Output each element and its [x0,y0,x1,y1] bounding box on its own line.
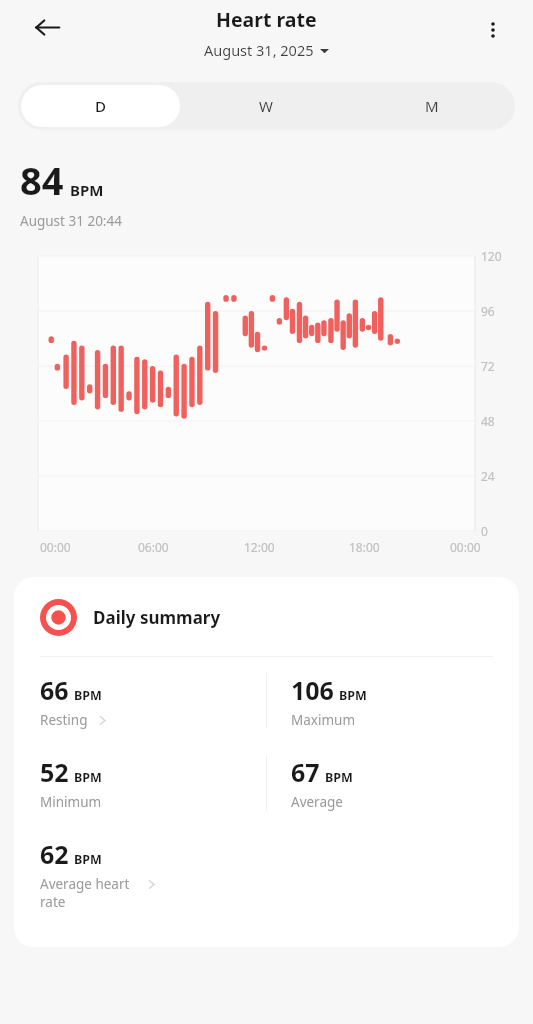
button[interactable]: Back [23,3,71,51]
staticText: 24 [481,468,495,484]
staticText: 96 [481,303,495,319]
staticText: August 31 20:44 [20,212,122,230]
button[interactable]: 62 [14,837,266,911]
staticText: Daily summary [93,606,221,629]
staticText: 00:00 [450,539,481,555]
staticText: 12:00 [244,539,275,555]
button[interactable]: M [352,85,512,127]
button[interactable]: 106 [267,673,519,735]
button[interactable]: More options [471,8,515,52]
button[interactable]: 52 [14,755,266,817]
staticText: 66 [40,673,69,707]
staticText: BPM [339,687,367,704]
staticText: rate [40,893,66,911]
button[interactable]: W [186,85,346,127]
staticText: 52 [40,755,69,789]
staticText: BPM [74,687,102,704]
staticText: D [95,96,106,116]
staticText: BPM [70,180,104,200]
staticText: 48 [481,413,495,429]
staticText: 06:00 [138,539,169,555]
staticText: BPM [74,851,102,868]
staticText: Maximum [291,711,356,729]
staticText: 67 [291,755,320,789]
button[interactable]: D [21,85,180,127]
button[interactable]: 66 [14,673,266,735]
staticText: 72 [481,358,495,374]
staticText: Average heart [40,875,130,893]
staticText: Minimum [40,793,102,811]
staticText: W [259,96,273,116]
staticText: BPM [74,769,102,786]
staticText: 106 [291,673,334,707]
staticText: August 31, 2025 [204,40,314,60]
staticText: 120 [481,248,502,264]
staticText: Resting [40,711,88,729]
staticText: 18:00 [349,539,380,555]
staticText: 00:00 [40,539,71,555]
staticText: 84 [20,154,64,206]
staticText: M [425,96,439,116]
staticText: Heart rate [216,6,317,33]
button[interactable]: 67 [267,755,519,817]
button[interactable]: Daily summary [14,577,519,656]
staticText: 62 [40,837,69,871]
button[interactable]: August 31, 2025 [198,38,335,62]
staticText: Average [291,793,343,811]
staticText: 0 [481,523,488,539]
staticText: BPM [325,769,353,786]
